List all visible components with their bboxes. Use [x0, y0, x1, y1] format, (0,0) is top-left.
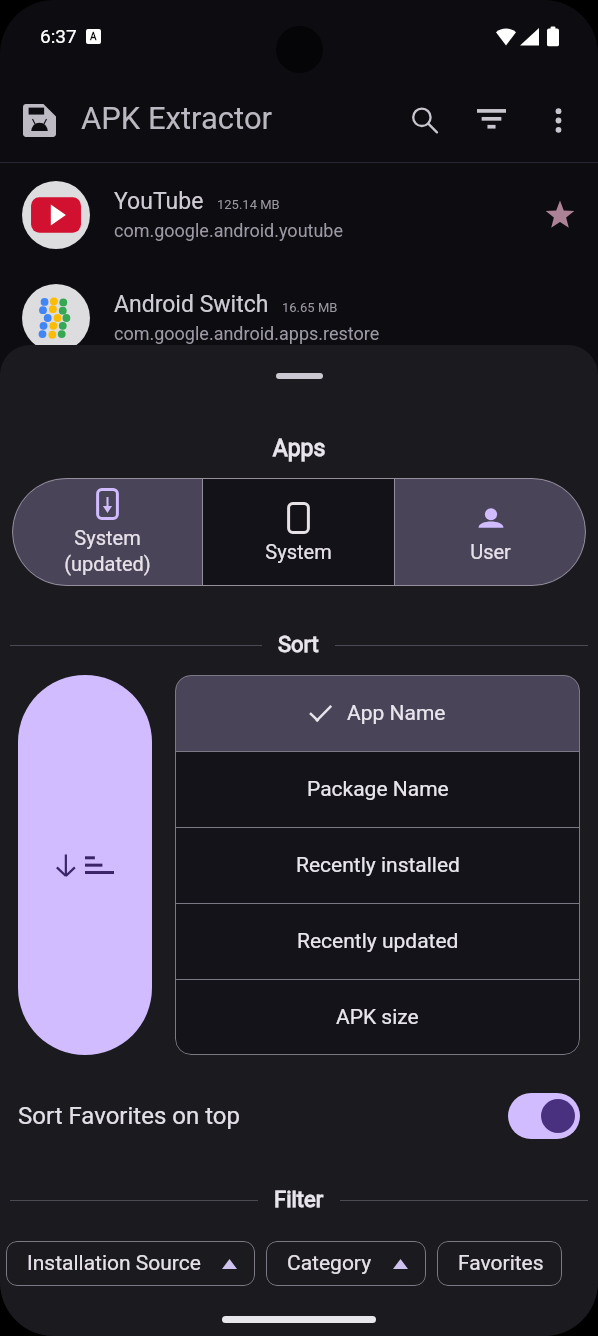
button[interactable]: Android Switch — [0, 266, 598, 369]
staticText: APK Extractor — [81, 100, 273, 136]
button[interactable]: Package Name — [175, 752, 580, 827]
staticText: 16.65 MB — [282, 300, 338, 315]
button[interactable]: Favorites — [437, 1241, 562, 1286]
button[interactable]: APK size — [175, 980, 580, 1055]
button[interactable]: More options — [532, 94, 584, 146]
staticText: YouTube — [114, 188, 204, 215]
button[interactable]: User — [395, 478, 586, 586]
staticText: APK size — [336, 1005, 419, 1030]
staticText: 125.14 MB — [217, 197, 280, 212]
button[interactable]: Sort ascending — [18, 675, 152, 1055]
staticText: Android Switch — [114, 291, 269, 318]
button[interactable]: Filter — [465, 94, 517, 146]
staticText: Favorites — [458, 1251, 544, 1276]
staticText: com.google.android.apps.restore — [114, 323, 380, 344]
button[interactable]: Recently updated — [175, 904, 580, 979]
button[interactable]: YouTube — [0, 163, 598, 266]
staticText: Recently updated — [297, 929, 459, 954]
staticText: System — [265, 540, 332, 563]
button[interactable]: Search — [398, 94, 450, 146]
button[interactable]: System — [203, 478, 394, 586]
staticText: 6:37 — [40, 25, 77, 47]
button[interactable]: Recently installed — [175, 828, 580, 903]
button[interactable]: Sort Favorites on top — [0, 1080, 598, 1152]
button[interactable]: App Name — [175, 675, 580, 751]
staticText: A — [90, 31, 97, 43]
staticText: com.google.android.calendar — [114, 426, 349, 447]
staticText: Apps — [0, 435, 598, 462]
staticText: Filter — [274, 1187, 324, 1213]
staticText: Category — [287, 1251, 372, 1276]
button[interactable]: Category — [266, 1241, 426, 1286]
staticText: Installation Source — [27, 1251, 201, 1276]
staticText: com.google.android.youtube — [114, 220, 344, 241]
staticText: System (updated) — [64, 526, 151, 576]
button[interactable]: Installation Source — [6, 1241, 255, 1286]
staticText: Sort — [278, 632, 319, 658]
button[interactable]: Calendar — [0, 369, 598, 472]
staticText: Recently installed — [296, 853, 460, 878]
staticText: User — [470, 540, 511, 563]
staticText: Sort Favorites on top — [18, 1102, 240, 1130]
button[interactable]: Favorite — [538, 193, 582, 237]
staticText: Package Name — [307, 777, 449, 802]
staticText: App Name — [347, 701, 446, 726]
button[interactable]: System (updated) — [12, 478, 202, 586]
